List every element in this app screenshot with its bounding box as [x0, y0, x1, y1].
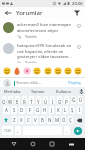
staticText: 2	[10, 96, 12, 99]
staticText: H	[43, 107, 47, 113]
button[interactable]: Home	[28, 139, 38, 149]
staticText: K	[57, 107, 60, 113]
button[interactable]: Quick reaction 6	[54, 67, 62, 75]
button[interactable]: 5	[29, 96, 34, 104]
staticText: 9	[59, 96, 61, 99]
staticText: 20:06	[72, 1, 83, 7]
button[interactable]: ,	[15, 126, 21, 135]
button[interactable]: Shift	[2, 116, 10, 124]
button[interactable]: Switch keyboard	[66, 139, 76, 149]
button[interactable]: .	[64, 126, 70, 135]
button[interactable]: F	[27, 106, 33, 114]
button[interactable]: Back	[9, 139, 19, 149]
button[interactable]: İ	[77, 106, 82, 114]
button[interactable]: Tamam	[25, 87, 51, 95]
button[interactable]: X	[19, 116, 24, 124]
button[interactable]: L	[63, 106, 68, 114]
button[interactable]: Back	[3, 8, 13, 18]
button[interactable]: Paylaş	[67, 79, 82, 87]
staticText: Ö	[62, 117, 66, 123]
button[interactable]: 4	[22, 96, 27, 104]
staticText: S	[13, 107, 16, 113]
staticText: B	[41, 117, 44, 123]
staticText: J	[51, 107, 53, 113]
button[interactable]: H	[42, 106, 47, 114]
button[interactable]: K	[56, 106, 61, 114]
button[interactable]: Like	[75, 43, 82, 50]
button[interactable]: Quick reaction 5	[44, 67, 52, 75]
staticText: 4	[24, 96, 26, 99]
staticText: Merhaba	[4, 89, 21, 94]
staticText: İ	[79, 107, 81, 113]
button[interactable]: Z	[12, 116, 17, 124]
staticText: I	[52, 99, 54, 104]
button[interactable]: N	[47, 116, 52, 124]
staticText: hatiqueen999 Sonulacak en cok hayacilar,…	[17, 43, 73, 59]
button[interactable]: Recent apps	[47, 139, 57, 149]
staticText: G	[36, 107, 40, 113]
button[interactable]: 8	[50, 96, 55, 104]
button[interactable]: C	[26, 116, 31, 124]
button[interactable]: Send	[74, 127, 82, 135]
button[interactable]: Quick reaction 7	[64, 67, 72, 75]
button[interactable]: Quick reaction 4	[33, 67, 41, 75]
button[interactable]: Ü	[78, 96, 83, 104]
button[interactable]: A	[3, 106, 9, 114]
staticText: L	[64, 107, 67, 113]
staticText: U	[44, 99, 48, 104]
staticText: 1g	[17, 34, 22, 39]
staticText: Yanitla	[25, 60, 37, 63]
button[interactable]: 2	[8, 96, 13, 104]
staticText: ?123	[4, 129, 11, 133]
button[interactable]: Ğ	[71, 96, 76, 104]
button[interactable]: G	[35, 106, 40, 114]
button[interactable]: D	[19, 106, 25, 114]
staticText: Z	[13, 117, 16, 123]
button[interactable]: Ö	[61, 116, 66, 124]
button[interactable]: Ç	[68, 116, 73, 124]
staticText: O	[58, 99, 62, 104]
staticText: 1	[3, 96, 5, 99]
button[interactable]: Voice input	[77, 87, 85, 95]
button[interactable]: Quick reaction 1	[3, 67, 11, 75]
button[interactable]: 0	[64, 96, 69, 104]
button[interactable]: B	[40, 116, 45, 124]
button[interactable]: Kullanıcı	[51, 87, 77, 95]
button[interactable]: hatiqueen999 Sonulacak en cok hayacilar,…	[0, 41, 85, 65]
button[interactable]: V	[33, 116, 38, 124]
staticText: N	[48, 117, 52, 123]
staticText: 1g	[17, 60, 22, 63]
staticText: Ü	[79, 97, 83, 103]
button[interactable]: 6	[36, 96, 41, 104]
staticText: V	[34, 117, 37, 123]
button[interactable]: 9	[57, 96, 62, 104]
button[interactable]: ?123	[2, 126, 13, 135]
button[interactable]: Merhaba	[0, 87, 25, 95]
staticText: X	[20, 117, 23, 123]
button[interactable]: Quick reaction 3	[23, 67, 31, 75]
button[interactable]: M	[54, 116, 59, 124]
staticText: Q	[2, 99, 6, 104]
staticText: Yorum ekle...	[16, 80, 42, 86]
staticText: M	[55, 117, 59, 123]
button[interactable]: Quick reaction 8	[74, 67, 82, 75]
button[interactable]: S	[11, 106, 17, 114]
button[interactable]: 7	[43, 96, 48, 104]
staticText: Yanitla	[25, 34, 37, 39]
staticText: W	[8, 99, 13, 104]
staticText: D	[20, 107, 24, 113]
button[interactable]: Like	[75, 22, 82, 29]
staticText: T	[30, 99, 33, 104]
staticText: 8	[52, 96, 54, 99]
button[interactable]: Ş	[70, 106, 75, 114]
button[interactable]: Backspace	[75, 116, 83, 124]
button[interactable]: 1	[2, 96, 6, 104]
button[interactable]: Sort comments	[72, 8, 82, 18]
button[interactable]: Quick reaction 2	[13, 67, 21, 75]
button[interactable]: J	[49, 106, 54, 114]
staticText: 3	[17, 96, 19, 99]
button[interactable]: 3	[15, 96, 20, 104]
button[interactable]: Yorum ekle...	[14, 80, 67, 86]
button[interactable]: ackerman0 bize inanmayan abonelerimizin …	[0, 20, 85, 41]
